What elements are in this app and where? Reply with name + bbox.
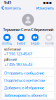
staticText: Поделиться контактом [4,78,45,83]
staticText: Контакты [4,5,21,11]
staticText: мобильный [4,48,21,51]
button[interactable]: Добавить в Избранное [2,84,54,91]
staticText: почта [45,42,53,45]
staticText: 9:41 [4,0,11,5]
button[interactable]: Изменить [36,5,56,11]
staticText: Заблокировать абонента [4,92,47,98]
staticText: ▪▪▪ [43,0,52,5]
button[interactable]: Контакты [0,5,21,11]
staticText: вызов [16,42,25,45]
button[interactable]: Заблокировать абонента [2,92,54,99]
staticText: +7 495 987-65-43 [4,61,32,67]
staticText: Терминал Сети Сбережений [3,27,53,32]
button[interactable]: рабочий [2,57,54,67]
button[interactable]: мобильный [2,47,54,57]
staticText: +7 916 123-45-67 [4,51,32,56]
button[interactable]: видео [28,33,42,45]
button[interactable]: почта [42,33,56,45]
button[interactable]: Отправить сообщение [2,69,54,76]
button[interactable]: Поделиться контактом [2,77,54,84]
staticText: Изменить [36,5,54,11]
staticText: рабочий [4,58,17,61]
staticText: видео [30,42,39,45]
button[interactable]: сообщ. [0,33,14,45]
button[interactable]: вызов [14,33,28,45]
staticText: Отправить сообщение [4,70,44,75]
staticText: Добавить в Избранное [4,85,44,90]
staticText: сообщ. [2,42,12,45]
